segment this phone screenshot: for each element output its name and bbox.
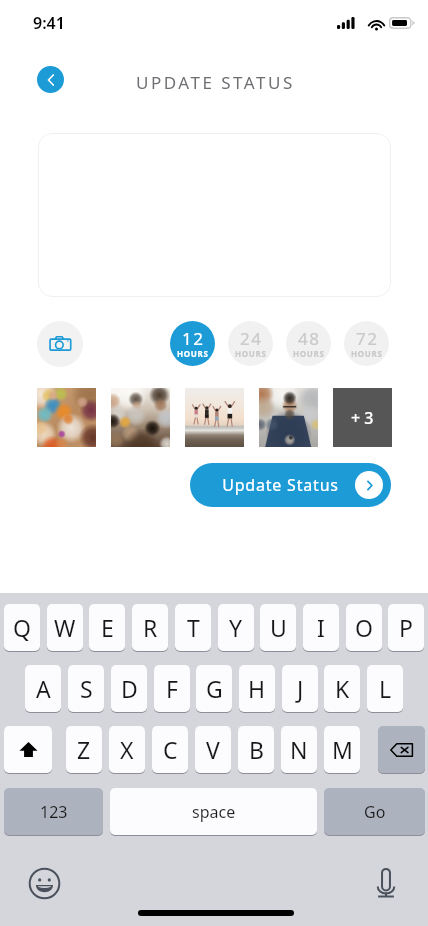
staticText: G bbox=[206, 673, 223, 704]
button[interactable]: 72 bbox=[344, 321, 389, 366]
button[interactable]: + 3 bbox=[333, 388, 392, 447]
staticText: T bbox=[187, 612, 200, 643]
button[interactable] bbox=[111, 388, 170, 447]
staticText: HOURS bbox=[351, 348, 383, 359]
button[interactable]: Camera bbox=[37, 321, 83, 367]
button[interactable]: O bbox=[346, 604, 382, 652]
button[interactable]: Emoji bbox=[21, 860, 67, 906]
staticText: 48 bbox=[298, 327, 321, 350]
staticText: X bbox=[120, 734, 134, 765]
button[interactable]: Z bbox=[66, 726, 102, 774]
button[interactable]: L bbox=[367, 665, 403, 713]
button[interactable]: E bbox=[89, 604, 125, 652]
staticText: Z bbox=[77, 734, 91, 765]
staticText: S bbox=[80, 673, 93, 704]
button[interactable]: 12 bbox=[170, 321, 215, 366]
staticText: U bbox=[270, 612, 287, 643]
button[interactable]: K bbox=[324, 665, 360, 713]
button[interactable]: S bbox=[68, 665, 104, 713]
staticText: 72 bbox=[356, 327, 379, 350]
button[interactable]: D bbox=[111, 665, 147, 713]
staticText: P bbox=[399, 612, 413, 643]
staticText: L bbox=[379, 673, 392, 704]
button[interactable]: Q bbox=[4, 604, 40, 652]
staticText: Go bbox=[364, 801, 386, 823]
button[interactable]: 123 bbox=[4, 788, 103, 836]
button[interactable]: Back bbox=[37, 66, 64, 93]
staticText: HOURS bbox=[235, 348, 267, 359]
button[interactable]: C bbox=[152, 726, 188, 774]
button[interactable] bbox=[37, 388, 96, 447]
staticText: W bbox=[54, 612, 76, 643]
staticText: Update Status bbox=[206, 474, 355, 496]
button[interactable]: space bbox=[110, 788, 317, 836]
button[interactable]: Update Status bbox=[190, 463, 391, 507]
staticText: + 3 bbox=[351, 407, 374, 429]
button[interactable]: B bbox=[238, 726, 274, 774]
button[interactable]: U bbox=[260, 604, 296, 652]
staticText: Q bbox=[13, 612, 31, 643]
staticText: F bbox=[166, 673, 178, 704]
staticText: B bbox=[249, 734, 264, 765]
staticText: space bbox=[192, 801, 236, 823]
staticText: N bbox=[290, 734, 308, 765]
button[interactable]: Y bbox=[218, 604, 254, 652]
staticText: E bbox=[101, 612, 114, 643]
button[interactable]: X bbox=[109, 726, 145, 774]
staticText: R bbox=[143, 612, 158, 643]
button[interactable]: G bbox=[196, 665, 232, 713]
staticText: 24 bbox=[240, 327, 263, 350]
staticText: K bbox=[335, 673, 350, 704]
button[interactable]: V bbox=[195, 726, 231, 774]
button[interactable]: P bbox=[388, 604, 424, 652]
button[interactable] bbox=[185, 388, 244, 447]
staticText: H bbox=[248, 673, 266, 704]
button[interactable]: R bbox=[132, 604, 168, 652]
button[interactable]: 24 bbox=[228, 321, 273, 366]
button[interactable]: Shift bbox=[4, 726, 52, 774]
staticText: O bbox=[355, 612, 373, 643]
staticText: M bbox=[332, 734, 353, 765]
button[interactable]: N bbox=[281, 726, 317, 774]
staticText: V bbox=[206, 734, 220, 765]
staticText: HOURS bbox=[177, 348, 209, 359]
button[interactable]: F bbox=[154, 665, 190, 713]
staticText: A bbox=[36, 673, 51, 704]
staticText: I bbox=[317, 612, 325, 643]
staticText: C bbox=[163, 734, 178, 765]
staticText: 12 bbox=[182, 327, 205, 350]
button[interactable]: J bbox=[282, 665, 318, 713]
button[interactable]: 48 bbox=[286, 321, 331, 366]
button[interactable]: A bbox=[25, 665, 61, 713]
staticText: Y bbox=[229, 612, 243, 643]
button[interactable]: W bbox=[47, 604, 83, 652]
button[interactable]: Backspace bbox=[378, 726, 425, 774]
button[interactable]: Go bbox=[324, 788, 425, 836]
button[interactable]: H bbox=[239, 665, 275, 713]
button[interactable]: M bbox=[324, 726, 360, 774]
button[interactable] bbox=[259, 388, 318, 447]
staticText: 123 bbox=[40, 801, 68, 823]
staticText: UPDATE STATUS bbox=[136, 71, 295, 94]
staticText: 9:41 bbox=[33, 12, 65, 34]
staticText: J bbox=[297, 673, 304, 704]
button[interactable]: I bbox=[303, 604, 339, 652]
button[interactable]: Microphone bbox=[363, 860, 409, 906]
button[interactable]: T bbox=[175, 604, 211, 652]
staticText: HOURS bbox=[293, 348, 325, 359]
staticText: D bbox=[121, 673, 138, 704]
